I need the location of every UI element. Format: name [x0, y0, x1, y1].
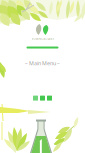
- button[interactable]: Page three: [47, 96, 52, 101]
- button[interactable]: Page one: [33, 96, 38, 101]
- staticText: – Main Menu –: [25, 59, 60, 67]
- staticText: BOTANICAL LABS: [31, 37, 53, 40]
- button[interactable]: Page two: [40, 96, 45, 101]
